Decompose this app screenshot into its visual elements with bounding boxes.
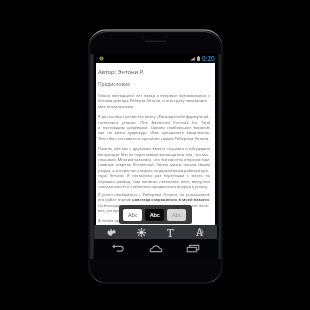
button[interactable]: Colors <box>99 225 123 239</box>
staticText: тора Энтони. Я несколько раз переезжал с… <box>98 173 210 178</box>
staticText: 0:20 <box>202 54 215 63</box>
button[interactable]: Recent apps <box>180 240 206 257</box>
staticText: век, который помог <box>98 208 136 213</box>
staticText: Я успел пообщаться с Робертом Энтони, но… <box>98 192 210 197</box>
staticText: T <box>167 225 174 239</box>
staticText: слышали. Многим казалось, что эти кассет… <box>98 157 210 162</box>
button[interactable]: Abc <box>167 209 186 221</box>
staticText: солютного успеха» (The Advanced Formula … <box>98 120 210 125</box>
staticText: Автор: Энтони Р. <box>98 68 144 76</box>
staticText: пережил развод, сам написал несколько кн… <box>98 179 210 184</box>
button[interactable]: Brightness <box>129 225 153 239</box>
staticText: Помню, как мы с друзьями вместе слушали … <box>98 146 210 151</box>
staticText: редом, и я перестал следить за дальнейше… <box>98 168 209 173</box>
button[interactable]: Abc <box>145 209 164 221</box>
staticText: мне гениальными. <box>98 104 134 109</box>
staticText: зал на меня аудиокурс «Как преодолеть мы… <box>98 130 210 135</box>
button[interactable]: Back <box>105 240 131 257</box>
staticText: но благодаря ему я понял, насколько вели… <box>98 203 210 208</box>
staticText: Abc <box>150 211 160 219</box>
staticText: Текст был составлен и прочитан самим Роб… <box>98 136 210 141</box>
staticText: Предисловие <box>98 81 130 88</box>
staticText: Около пятнадцати лет назад я впервые поз… <box>98 93 210 98</box>
staticText: Abc <box>128 211 138 219</box>
button[interactable]: Text <box>158 225 182 239</box>
staticText: главные секреты Вселенной. Затем жизнь п… <box>98 162 210 167</box>
staticText: A <box>196 225 204 239</box>
button[interactable]: Abc <box>123 209 142 221</box>
staticText: Abc <box>172 211 182 219</box>
staticText: и настоящим шедевром. Однако наибольшее … <box>98 125 210 130</box>
staticText: концепции. Мы не переставали восхищаться… <box>98 152 208 157</box>
staticText: А потом про <box>98 218 122 223</box>
staticText: его работ знание навсегда сохранилось в … <box>98 197 210 202</box>
staticText: Я до сих пор считаю его книгу «Расширенн… <box>98 114 210 119</box>
staticText: ботами доктора Роберта Энтони, и они сра… <box>98 98 208 103</box>
button[interactable]: Font <box>188 225 212 239</box>
staticText: сколько кассет и стабильно продвигался в… <box>98 184 209 189</box>
button[interactable]: Home <box>143 240 169 257</box>
